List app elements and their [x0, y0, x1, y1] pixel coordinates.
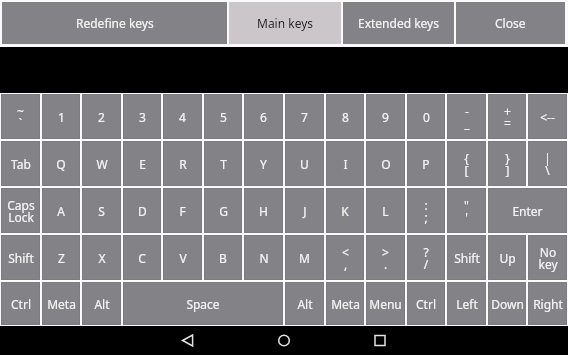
button[interactable]: Home	[189, 326, 284, 355]
button[interactable]: 6	[244, 94, 283, 139]
staticText: 2	[98, 109, 105, 125]
button[interactable]: : ;	[407, 188, 445, 233]
button[interactable]: H	[244, 188, 283, 233]
button[interactable]: T	[204, 141, 242, 186]
button[interactable]: Extended keys	[343, 2, 454, 44]
button[interactable]: Up	[488, 235, 526, 280]
button[interactable]: S	[82, 188, 121, 233]
button[interactable]: Z	[42, 235, 80, 280]
button[interactable]: B	[204, 235, 242, 280]
button[interactable]: 4	[163, 94, 202, 139]
button[interactable]: Close	[456, 2, 565, 44]
staticText: 4	[179, 109, 186, 125]
button[interactable]: 5	[204, 94, 242, 139]
staticText: { [	[464, 150, 469, 178]
staticText: Extended keys	[358, 15, 439, 31]
button[interactable]: R	[163, 141, 202, 186]
button[interactable]: A	[42, 188, 80, 233]
button[interactable]: Meta	[42, 282, 80, 325]
button[interactable]: Meta	[326, 282, 364, 325]
button[interactable]: Recent apps	[284, 326, 380, 355]
button[interactable]: 1	[42, 94, 80, 139]
staticText: E	[139, 156, 146, 172]
staticText: | \	[544, 150, 551, 178]
button[interactable]: G	[204, 188, 242, 233]
staticText: Right	[533, 296, 563, 312]
button[interactable]: Q	[42, 141, 80, 186]
button[interactable]: L	[366, 188, 405, 233]
staticText: H	[259, 203, 268, 219]
staticText: Z	[58, 250, 65, 266]
button[interactable]: Right	[528, 282, 567, 325]
button[interactable]: Caps Lock	[1, 188, 40, 233]
button[interactable]: " '	[447, 188, 486, 233]
button[interactable]: J	[285, 188, 324, 233]
staticText: Y	[260, 156, 267, 172]
staticText: ~ `	[17, 103, 24, 131]
button[interactable]: Left	[447, 282, 486, 325]
button[interactable]: 9	[366, 94, 405, 139]
button[interactable]: Shift	[447, 235, 486, 280]
button[interactable]: D	[123, 188, 161, 233]
button[interactable]: Alt	[82, 282, 121, 325]
button[interactable]: Ctrl	[407, 282, 445, 325]
button[interactable]: No key	[528, 235, 567, 280]
staticText: Ctrl	[416, 296, 436, 312]
button[interactable]: 0	[407, 94, 445, 139]
button[interactable]: Main keys	[229, 2, 341, 44]
staticText: - _	[464, 103, 470, 131]
button[interactable]: P	[407, 141, 445, 186]
staticText: 9	[382, 109, 389, 125]
button[interactable]: <--	[528, 94, 567, 139]
staticText: Close	[495, 15, 526, 31]
staticText: Main keys	[257, 15, 314, 31]
button[interactable]: Ctrl	[1, 282, 40, 325]
staticText: O	[381, 156, 391, 172]
button[interactable]: Space	[123, 282, 283, 325]
button[interactable]: < ,	[326, 235, 364, 280]
button[interactable]: Shift	[1, 235, 40, 280]
staticText: U	[300, 156, 309, 172]
button[interactable]: + =	[488, 94, 526, 139]
button[interactable]: V	[163, 235, 202, 280]
button[interactable]: > .	[366, 235, 405, 280]
button[interactable]: ~ `	[1, 94, 40, 139]
button[interactable]: C	[123, 235, 161, 280]
staticText: <--	[540, 109, 555, 125]
button[interactable]: Alt	[285, 282, 324, 325]
button[interactable]: 2	[82, 94, 121, 139]
button[interactable]: U	[285, 141, 324, 186]
staticText: Up	[499, 250, 516, 266]
button[interactable]: 3	[123, 94, 161, 139]
button[interactable]: - _	[447, 94, 486, 139]
button[interactable]: E	[123, 141, 161, 186]
button[interactable]: Redefine keys	[2, 2, 227, 44]
button[interactable]: 7	[285, 94, 324, 139]
button[interactable]: | \	[528, 141, 567, 186]
button[interactable]: Enter	[488, 188, 567, 233]
button[interactable]: ? /	[407, 235, 445, 280]
staticText: 3	[139, 109, 146, 125]
staticText: 0	[423, 109, 430, 125]
button[interactable]: F	[163, 188, 202, 233]
button[interactable]: Back	[0, 326, 189, 355]
button[interactable]: X	[82, 235, 121, 280]
button[interactable]: I	[326, 141, 364, 186]
button[interactable]: 8	[326, 94, 364, 139]
button[interactable]: K	[326, 188, 364, 233]
button[interactable]: N	[244, 235, 283, 280]
button[interactable]: } ]	[488, 141, 526, 186]
staticText: G	[219, 203, 228, 219]
button[interactable]: O	[366, 141, 405, 186]
staticText: C	[138, 250, 146, 266]
staticText: K	[341, 203, 349, 219]
button[interactable]: Y	[244, 141, 283, 186]
button[interactable]: W	[82, 141, 121, 186]
button[interactable]: Tab	[1, 141, 40, 186]
staticText: Left	[456, 296, 478, 312]
button[interactable]: { [	[447, 141, 486, 186]
button[interactable]: M	[285, 235, 324, 280]
button[interactable]: Menu	[366, 282, 405, 325]
button[interactable]: Down	[488, 282, 526, 325]
staticText: 6	[260, 109, 267, 125]
